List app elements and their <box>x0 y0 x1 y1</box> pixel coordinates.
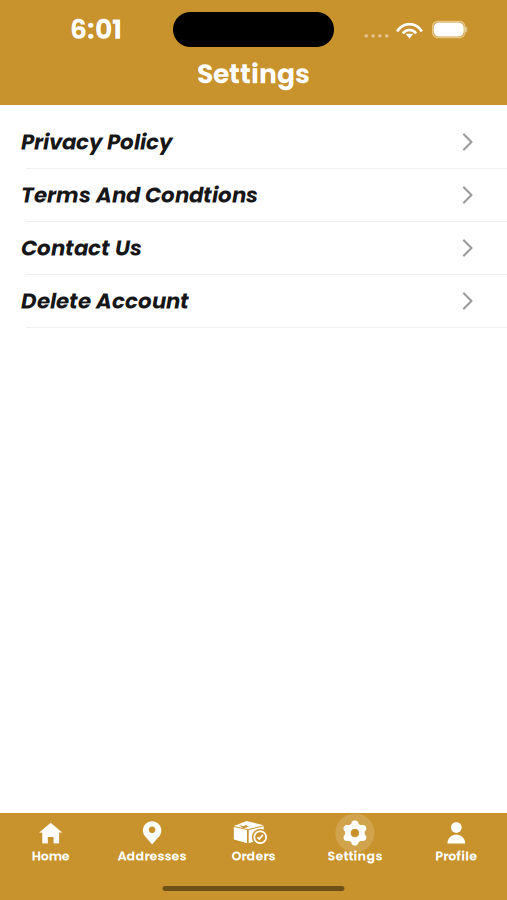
button[interactable]: Addresses <box>101 820 203 862</box>
button[interactable]: Terms And Condtions <box>0 169 507 222</box>
button[interactable]: Settings <box>304 820 406 862</box>
button[interactable]: Privacy Policy <box>0 116 507 169</box>
staticText: Delete Account <box>21 286 189 316</box>
staticText: Privacy Policy <box>21 127 172 157</box>
button[interactable]: Home <box>0 820 101 862</box>
staticText: Profile <box>435 847 477 865</box>
staticText: Home <box>32 847 70 865</box>
button[interactable]: Contact Us <box>0 222 507 275</box>
staticText: Settings <box>197 55 310 93</box>
staticText: 6:01 <box>70 11 122 48</box>
button[interactable]: Orders <box>203 820 304 862</box>
staticText: Terms And Condtions <box>21 180 258 210</box>
button[interactable]: Delete Account <box>0 275 507 328</box>
button[interactable]: Profile <box>406 820 507 862</box>
staticText: Addresses <box>118 847 187 865</box>
staticText: Settings <box>327 847 382 865</box>
staticText: Contact Us <box>21 233 142 263</box>
staticText: Orders <box>231 847 275 865</box>
